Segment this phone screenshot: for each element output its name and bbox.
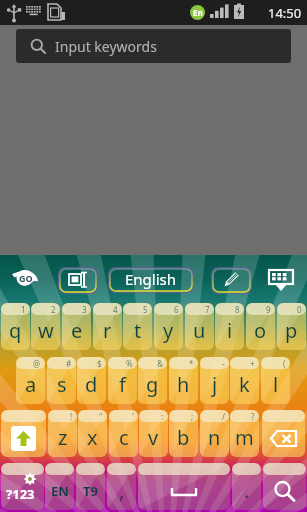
staticText: h <box>177 371 190 398</box>
staticText: 7 <box>205 304 210 315</box>
button[interactable]: / <box>200 410 229 457</box>
staticText: / <box>222 411 225 422</box>
button[interactable]: 5 <box>123 303 152 350</box>
staticText: g <box>146 371 159 398</box>
button[interactable]: T9 <box>76 463 105 510</box>
staticText: 1 <box>21 304 26 315</box>
button[interactable]: 6 <box>154 303 183 350</box>
staticText: d <box>85 371 98 398</box>
button[interactable]: Hide keyboard <box>268 269 294 293</box>
button[interactable]: English <box>108 267 194 293</box>
staticText: English <box>125 269 177 289</box>
staticText: l <box>273 371 279 398</box>
staticText: * <box>189 358 194 369</box>
staticText: $ <box>97 358 102 369</box>
button[interactable] <box>1 410 46 457</box>
staticText: : <box>161 411 164 422</box>
staticText: + <box>250 358 255 369</box>
staticText: " <box>99 411 103 422</box>
button[interactable]: . <box>232 463 261 510</box>
staticText: i <box>227 317 233 344</box>
staticText: 4 <box>113 304 118 315</box>
button[interactable]: 0 <box>277 303 306 350</box>
staticText: , <box>119 477 125 504</box>
staticText: z <box>58 424 68 451</box>
staticText: v <box>148 424 159 451</box>
button[interactable]: % <box>108 357 137 404</box>
staticText: @ <box>33 358 41 369</box>
button[interactable]: 3 <box>62 303 91 350</box>
staticText: ?123 <box>6 485 35 503</box>
staticText: f <box>119 371 126 398</box>
staticText: j <box>212 371 218 398</box>
button[interactable]: " <box>78 410 107 457</box>
staticText: u <box>193 317 206 344</box>
button[interactable]: 7 <box>185 303 214 350</box>
staticText: # <box>66 358 72 369</box>
staticText: a <box>25 371 37 398</box>
staticText: n <box>208 424 221 451</box>
staticText: En <box>193 7 203 18</box>
staticText: . <box>244 477 250 504</box>
staticText: r <box>103 317 112 344</box>
staticText: e <box>71 317 83 344</box>
button[interactable]: 4 <box>93 303 122 350</box>
staticText: ; <box>191 411 194 422</box>
button[interactable]: 1 <box>1 303 30 350</box>
staticText: 8 <box>235 304 240 315</box>
button[interactable]: * <box>169 357 198 404</box>
staticText: b <box>177 424 190 451</box>
staticText: ( <box>283 358 286 369</box>
staticText: T9 <box>83 482 98 500</box>
staticText: 2 <box>51 304 56 315</box>
button[interactable]: 9 <box>246 303 275 350</box>
button[interactable]: ! <box>48 410 77 457</box>
button[interactable]: & <box>138 357 167 404</box>
staticText: 6 <box>174 304 179 315</box>
staticText: x <box>87 424 98 451</box>
staticText: c <box>119 424 129 451</box>
button[interactable]: , <box>107 463 136 510</box>
button[interactable]: - <box>200 357 229 404</box>
staticText: 9 <box>266 304 271 315</box>
staticText: s <box>57 371 67 398</box>
staticText: q <box>9 317 22 344</box>
staticText: 3 <box>82 304 87 315</box>
staticText: t <box>134 317 142 344</box>
button[interactable]: EN <box>45 463 74 510</box>
staticText: ? <box>251 411 255 422</box>
button[interactable]: ?123 <box>1 463 44 510</box>
staticText: w <box>38 317 54 344</box>
staticText: - <box>222 358 225 369</box>
staticText: o <box>254 317 267 344</box>
button[interactable] <box>263 463 306 510</box>
button[interactable]: @ <box>16 357 45 404</box>
button[interactable]: 2 <box>31 303 60 350</box>
button[interactable]: ( <box>261 357 290 404</box>
button[interactable] <box>262 410 305 457</box>
button[interactable]: Keyboard layout <box>58 267 98 294</box>
staticText: GO <box>19 272 33 284</box>
button[interactable]: $ <box>77 357 106 404</box>
button[interactable]: ? <box>230 410 259 457</box>
button[interactable] <box>138 463 230 510</box>
staticText: Input keywords <box>55 37 157 56</box>
button[interactable]: ; <box>169 410 198 457</box>
button[interactable]: # <box>47 357 76 404</box>
button[interactable]: GO Keyboard <box>11 268 39 288</box>
staticText: ! <box>70 411 73 422</box>
button[interactable]: + <box>230 357 259 404</box>
staticText: p <box>285 317 298 344</box>
button[interactable]: ' <box>109 410 138 457</box>
staticText: 5 <box>143 304 148 315</box>
staticText: m <box>235 424 254 451</box>
staticText: 0 <box>297 304 302 315</box>
staticText: % <box>126 358 133 369</box>
staticText: EN <box>51 482 69 500</box>
staticText: y <box>163 317 174 344</box>
button[interactable]: 8 <box>215 303 244 350</box>
button[interactable]: : <box>139 410 168 457</box>
button[interactable]: Handwriting <box>211 267 252 294</box>
button[interactable]: Input keywords <box>16 29 291 63</box>
staticText: 14:50 <box>268 4 302 22</box>
